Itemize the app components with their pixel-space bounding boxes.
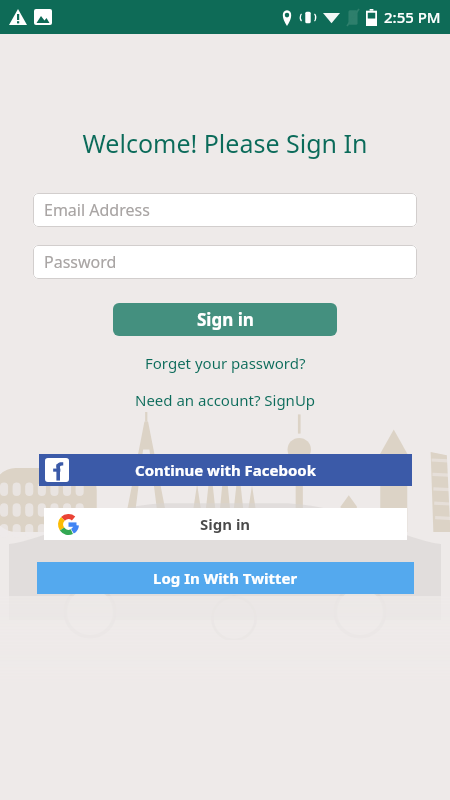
button[interactable]: Sign in xyxy=(44,508,407,540)
button[interactable]: Email Address xyxy=(33,193,417,227)
staticText: Sign in xyxy=(200,514,251,534)
button[interactable]: Sign in xyxy=(113,303,337,336)
button[interactable]: Forget your password? xyxy=(0,353,450,373)
staticText: Password xyxy=(44,251,117,273)
staticText: Welcome! Please Sign In xyxy=(0,126,450,160)
staticText: Continue with Facebook xyxy=(135,460,317,480)
staticText: Forget your password? xyxy=(145,353,306,373)
button[interactable]: Log In With Twitter xyxy=(37,562,414,594)
staticText: Email Address xyxy=(44,199,150,221)
button[interactable]: Need an account? SignUp xyxy=(0,390,450,410)
staticText: Need an account? SignUp xyxy=(135,390,316,410)
staticText: 2:55 PM xyxy=(384,7,441,27)
staticText: Log In With Twitter xyxy=(153,568,298,588)
staticText: Sign in xyxy=(197,308,254,331)
button[interactable]: Continue with Facebook xyxy=(39,454,412,486)
button[interactable]: Password xyxy=(33,245,417,279)
